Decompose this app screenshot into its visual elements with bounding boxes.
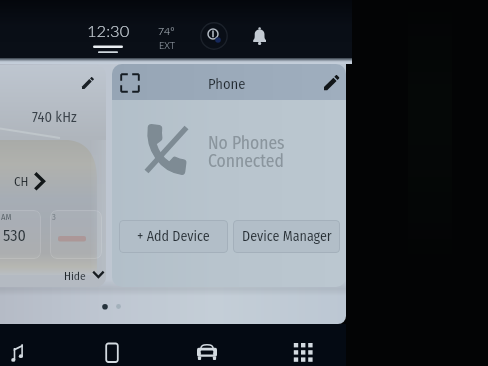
button[interactable] <box>0 210 41 259</box>
button[interactable]: Expand <box>120 73 140 93</box>
button[interactable]: Media <box>0 324 64 366</box>
button[interactable]: Edit radio <box>0 65 106 287</box>
staticText: Device Manager <box>242 228 332 245</box>
staticText: EXT <box>159 40 176 51</box>
staticText: CH <box>14 174 29 190</box>
staticText: Connected <box>208 151 284 172</box>
button[interactable]: + Add Device <box>119 220 228 253</box>
staticText: + Add Device <box>137 228 210 245</box>
button[interactable]: Edit phone <box>324 75 342 93</box>
staticText: No Phones <box>208 133 285 154</box>
button[interactable]: Device Manager <box>233 220 340 253</box>
staticText: Hide <box>64 269 86 283</box>
staticText: 3 <box>52 212 56 222</box>
button[interactable] <box>50 210 102 259</box>
staticText: 12:30 <box>87 21 130 41</box>
staticText: 740 kHz <box>32 108 77 125</box>
staticText: 530 <box>3 226 26 245</box>
button[interactable]: Phone <box>64 324 159 366</box>
button[interactable]: Profile <box>200 22 228 50</box>
staticText: 74° <box>158 25 175 38</box>
button[interactable]: Vehicle <box>160 324 255 366</box>
button[interactable]: Edit radio <box>82 77 98 93</box>
staticText: AM <box>1 212 12 222</box>
button[interactable]: Apps <box>255 324 350 366</box>
staticText: Phone <box>208 75 246 92</box>
button[interactable]: Notifications <box>252 27 273 48</box>
